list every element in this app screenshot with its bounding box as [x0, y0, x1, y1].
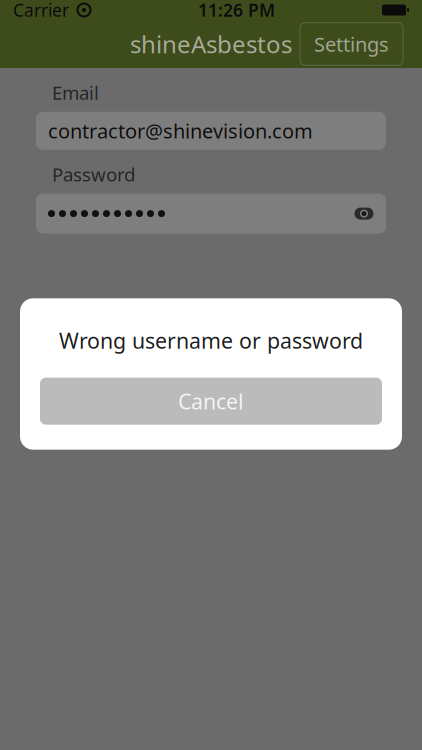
- staticText: Email: [52, 80, 99, 105]
- button[interactable]: Login: [159, 303, 263, 345]
- button[interactable]: contractor@shinevision.com: [36, 112, 386, 150]
- button[interactable]: Settings: [300, 23, 403, 65]
- staticText: Cancel: [178, 387, 244, 415]
- staticText: shineAsbestos: [130, 28, 292, 60]
- staticText: Password: [52, 162, 135, 187]
- staticText: Carrier: [13, 0, 69, 21]
- staticText: 11:26 PM: [198, 0, 275, 21]
- staticText: Login: [181, 308, 241, 339]
- staticText: Wrong username or password: [59, 326, 363, 355]
- staticText: Settings: [314, 31, 389, 57]
- button[interactable]: [36, 194, 386, 234]
- button[interactable]: Cancel: [40, 378, 382, 425]
- staticText: contractor@shinevision.com: [48, 117, 313, 144]
